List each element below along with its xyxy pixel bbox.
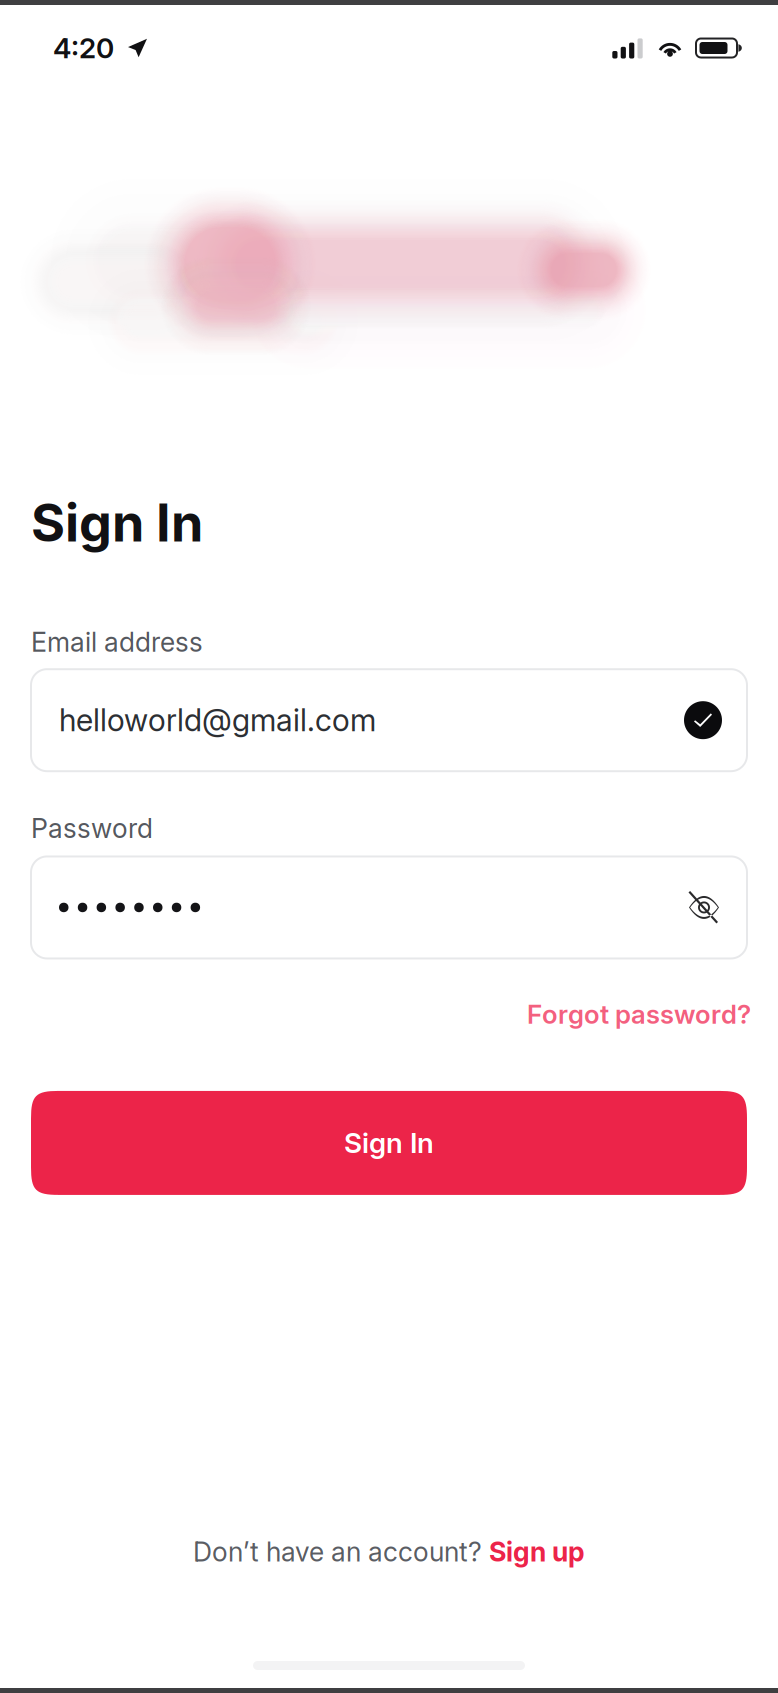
staticText: Sign up xyxy=(489,1536,585,1568)
button[interactable]: Sign In xyxy=(31,1091,747,1195)
staticText: Email address xyxy=(31,626,203,658)
button[interactable]: Forgot password? xyxy=(527,998,751,1030)
button[interactable]: Email verified xyxy=(684,701,722,739)
staticText: Sign In xyxy=(31,491,203,554)
staticText: Don’t have an account? xyxy=(193,1536,489,1568)
button[interactable]: Show password xyxy=(687,894,722,921)
button[interactable]: Sign up xyxy=(489,1536,585,1568)
staticText: Password xyxy=(31,812,153,844)
staticText: Forgot password? xyxy=(527,998,751,1030)
staticText: 4:20 xyxy=(53,31,114,65)
staticText: Sign In xyxy=(344,1126,434,1160)
staticText: helloworld@gmail.com xyxy=(59,702,376,739)
